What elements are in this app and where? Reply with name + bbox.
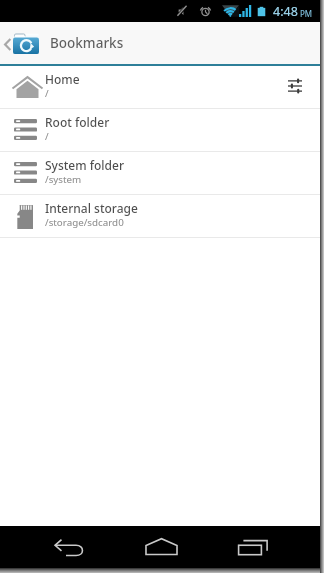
button[interactable]: Home: [115, 526, 207, 568]
button[interactable]: Navigate up: [0, 22, 44, 64]
staticText: 4:48: [273, 3, 298, 20]
button[interactable]: Root folder: [0, 109, 320, 152]
staticText: /system: [45, 173, 82, 186]
button[interactable]: Recents: [207, 526, 299, 568]
button[interactable]: System folder: [0, 152, 320, 195]
staticText: Bookmarks: [50, 34, 124, 52]
staticText: Home: [45, 71, 80, 87]
staticText: System folder: [45, 157, 124, 173]
button[interactable]: Internal storage: [0, 195, 320, 238]
staticText: /: [45, 130, 49, 143]
staticText: /storage/sdcard0: [45, 216, 124, 229]
staticText: Internal storage: [45, 200, 138, 216]
staticText: Root folder: [45, 114, 110, 130]
button[interactable]: Home: [0, 66, 320, 109]
staticText: /: [45, 87, 49, 100]
button[interactable]: Settings: [275, 63, 315, 106]
staticText: PM: [300, 8, 313, 19]
button[interactable]: Back: [23, 526, 115, 568]
